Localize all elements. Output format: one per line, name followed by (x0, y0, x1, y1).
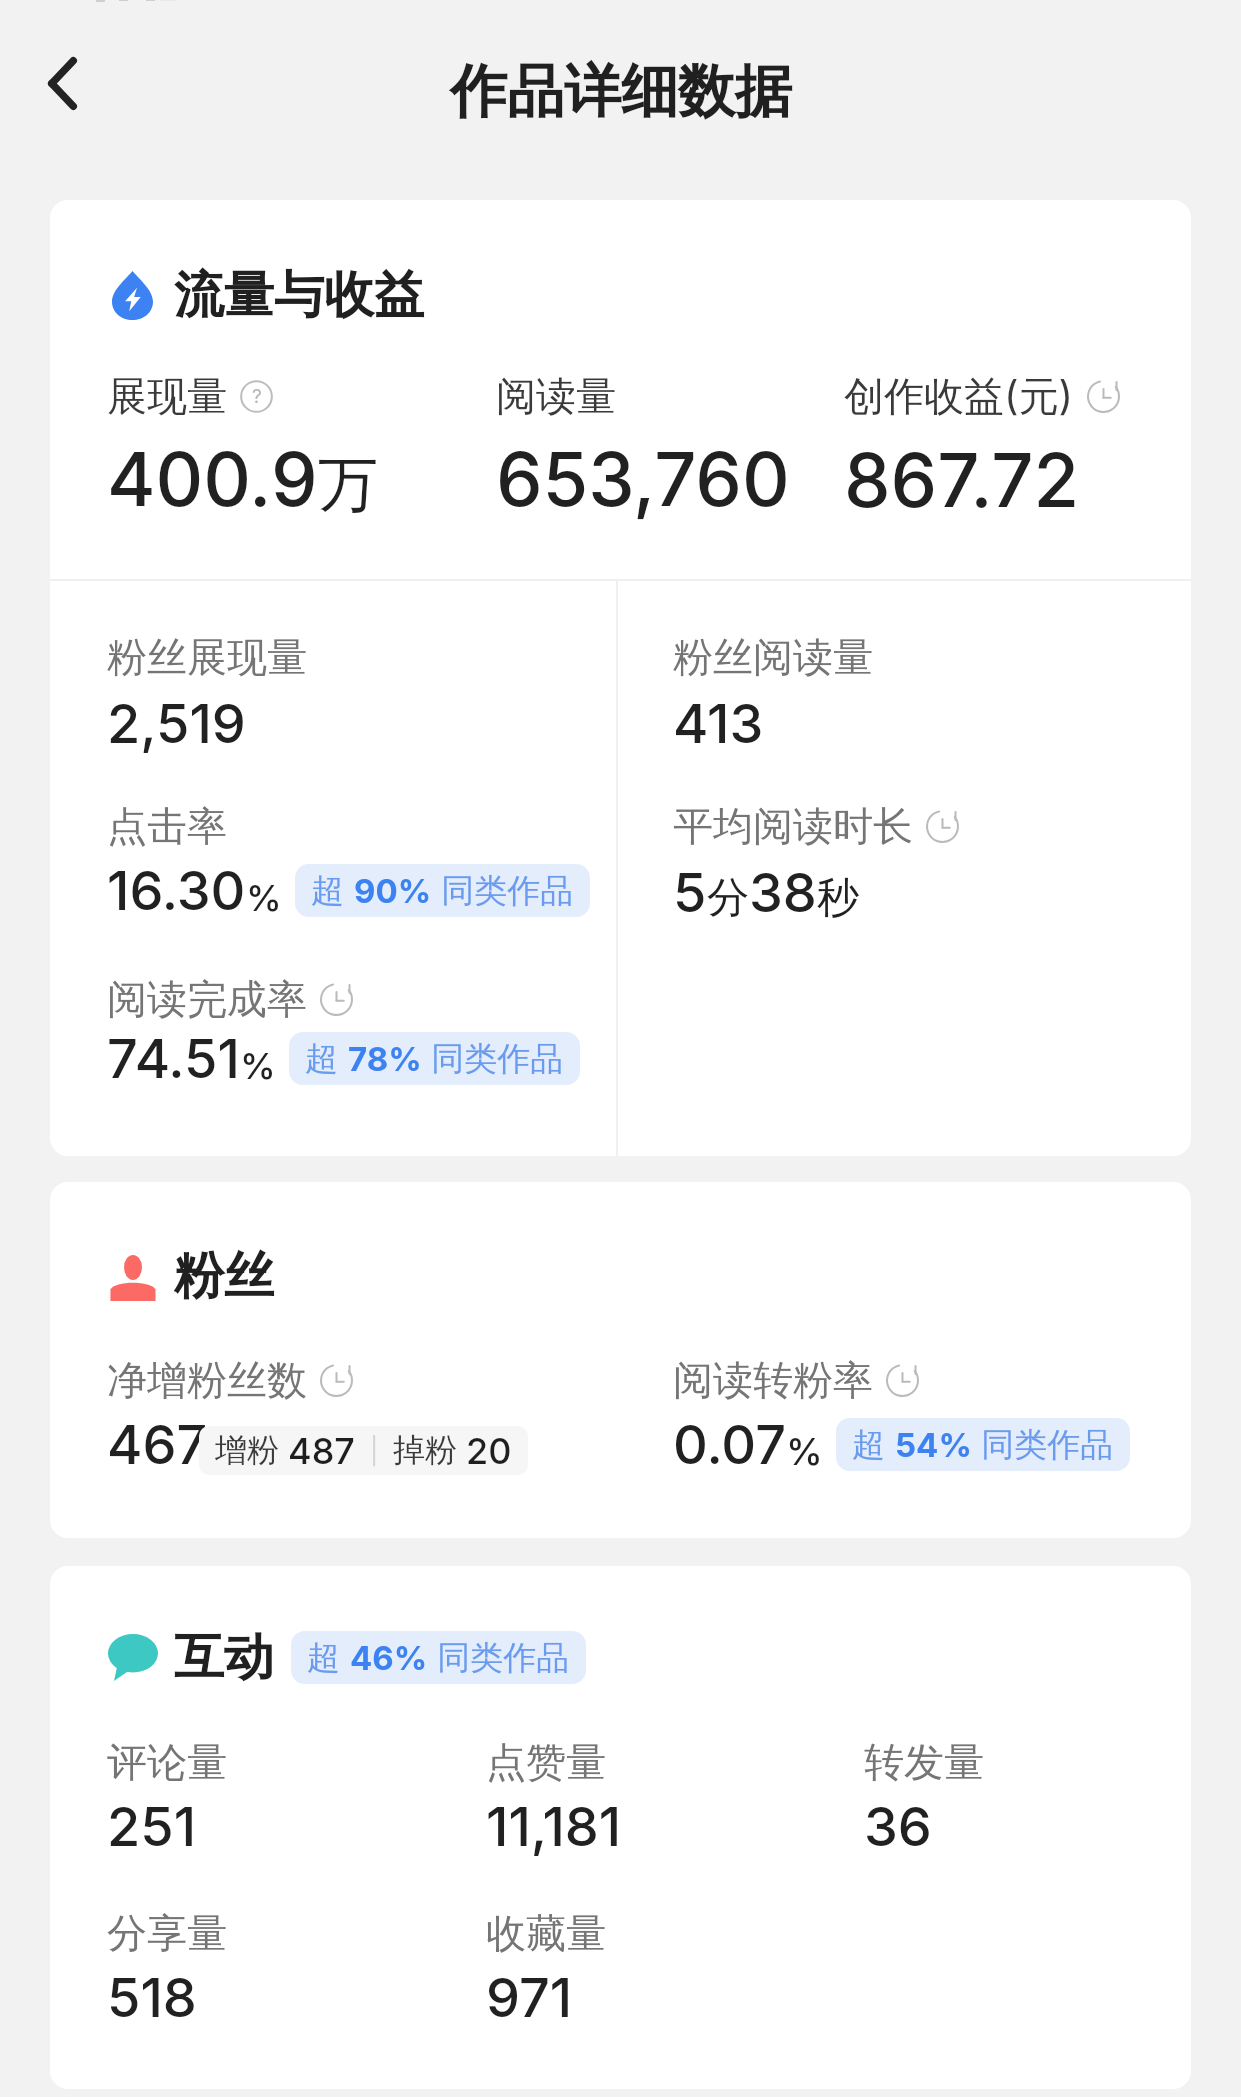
staticText: 同类作品 (432, 870, 574, 912)
staticText: 粉丝阅读量 (673, 632, 873, 682)
staticText: 38 (749, 860, 817, 925)
staticText: 粉丝 (174, 1245, 274, 1308)
staticText: 超 (311, 870, 354, 912)
button[interactable]: 创作收益(元) (844, 371, 1120, 525)
staticText: 同类作品 (972, 1424, 1114, 1466)
staticText: 16.30 (107, 858, 246, 923)
staticText: 467 (107, 1412, 208, 1477)
staticText: 78% (348, 1039, 422, 1079)
staticText: 251 (107, 1794, 197, 1859)
staticText: 秒 (817, 872, 859, 925)
staticText: 54% (895, 1425, 972, 1465)
staticText: 展现量 (107, 371, 227, 421)
staticText: % (240, 1044, 276, 1088)
staticText: 同类作品 (428, 1637, 570, 1679)
staticText: 评论量 (107, 1737, 227, 1787)
staticText: 超 (307, 1637, 350, 1679)
button[interactable]: 阅读量 (496, 371, 844, 524)
button[interactable]: 点赞量 (486, 1737, 864, 1859)
staticText: 粉丝展现量 (107, 632, 307, 682)
button[interactable]: What is this metric? (240, 380, 273, 413)
staticText: 11,181 (486, 1794, 622, 1859)
button[interactable]: 转发量 (864, 1737, 984, 1859)
button[interactable]: 收藏量 (486, 1908, 864, 2030)
staticText: 创作收益(元) (844, 371, 1074, 422)
staticText: ? (252, 384, 262, 407)
button[interactable]: Data updated periodically (926, 810, 959, 843)
staticText: 36 (864, 1794, 932, 1859)
staticText: % (246, 876, 282, 920)
staticText: 分享量 (107, 1908, 227, 1958)
staticText: 分 (707, 872, 749, 925)
staticText: 阅读完成率 (107, 974, 307, 1024)
staticText: 互动 (174, 1626, 274, 1689)
staticText: 阅读量 (496, 371, 616, 421)
button[interactable]: 展现量 (107, 371, 496, 524)
staticText: 90% (354, 871, 432, 911)
staticText: 增粉 (215, 1430, 288, 1471)
staticText: 518 (107, 1965, 197, 2030)
staticText: 971 (486, 1965, 573, 2030)
staticText: 平均阅读时长 (673, 801, 913, 851)
staticText: 5 (673, 860, 707, 925)
staticText: 0.07 (673, 1412, 786, 1477)
staticText: 同类作品 (422, 1038, 564, 1080)
staticText: 掉粉 (393, 1430, 466, 1471)
staticText: 净增粉丝数 (107, 1355, 307, 1405)
staticText: 点赞量 (486, 1737, 606, 1787)
staticText: 2,519 (107, 691, 246, 756)
button[interactable]: 评论量 (107, 1737, 486, 1859)
staticText: 487 (288, 1429, 355, 1473)
button[interactable]: Data updated periodically (320, 1364, 353, 1397)
staticText: 转发量 (864, 1737, 984, 1787)
staticText: 400.9 (107, 434, 318, 524)
staticText: 653,760 (496, 434, 790, 524)
staticText: 74.51 (107, 1026, 240, 1091)
staticText: 413 (673, 691, 764, 756)
staticText: 867.72 (844, 435, 1080, 525)
staticText: 流量与收益 (174, 264, 424, 327)
staticText: 阅读转粉率 (673, 1355, 873, 1405)
staticText: 收藏量 (486, 1908, 606, 1958)
button[interactable]: 分享量 (107, 1908, 486, 2030)
staticText: 46% (350, 1638, 428, 1678)
staticText: 20 (466, 1429, 512, 1473)
staticText: 万 (318, 447, 378, 523)
button[interactable]: Data updated periodically (1087, 380, 1120, 413)
staticText: % (786, 1429, 823, 1474)
button[interactable]: Data updated periodically (886, 1364, 919, 1397)
button[interactable]: Back (14, 35, 110, 131)
staticText: 超 (852, 1424, 895, 1466)
button[interactable]: Data updated periodically (320, 983, 353, 1016)
staticText: 点击率 (107, 801, 227, 851)
staticText: 超 (305, 1038, 348, 1080)
staticText: | (355, 1435, 393, 1466)
staticText: 作品详细数据 (450, 56, 792, 128)
